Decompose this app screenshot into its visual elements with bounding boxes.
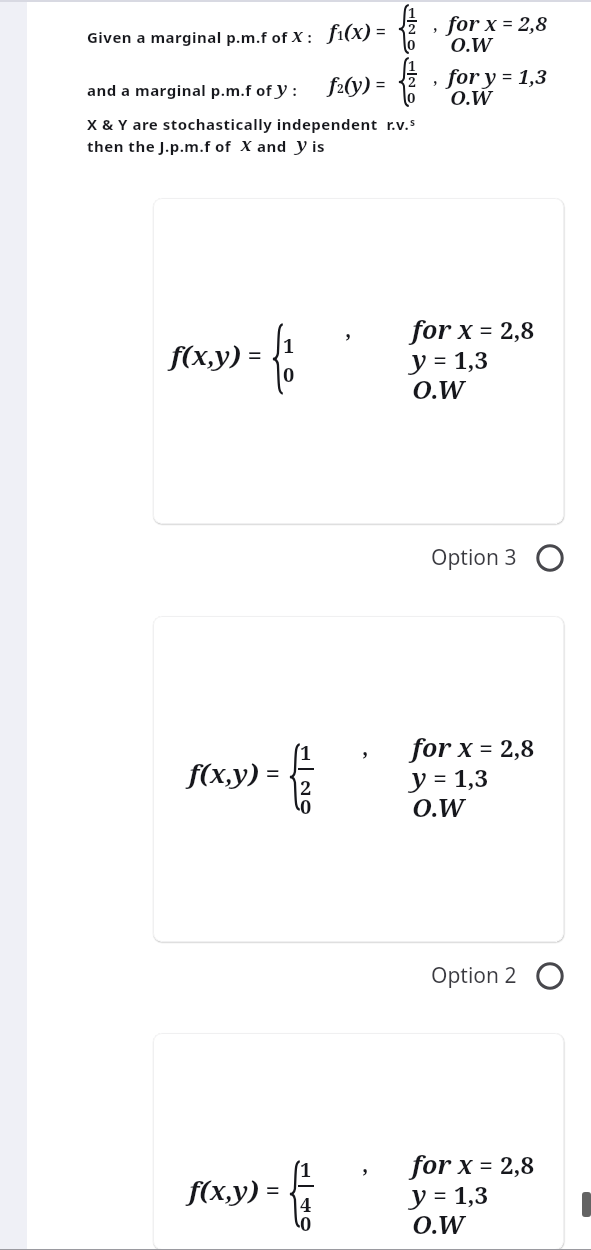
- staticText: =: [473, 731, 500, 764]
- staticText: 4: [300, 1191, 312, 1218]
- staticText: 2: [300, 774, 312, 801]
- staticText: f(x,y) =: [171, 337, 262, 372]
- staticText: O.W: [412, 790, 464, 824]
- staticText: ,: [362, 1148, 369, 1178]
- staticText: 2: [408, 72, 416, 91]
- staticText: y: [292, 132, 312, 157]
- staticText: :: [303, 27, 313, 47]
- staticText: 1,3: [454, 1178, 489, 1211]
- staticText: Option 3: [431, 543, 517, 572]
- staticText: f: [329, 72, 337, 98]
- staticText: =: [427, 761, 454, 794]
- staticText: O.W: [412, 1207, 464, 1241]
- staticText: :: [288, 80, 298, 100]
- staticText: for x: [412, 1147, 473, 1181]
- staticText: 0: [300, 793, 312, 820]
- staticText: 2: [337, 80, 344, 96]
- staticText: is: [312, 136, 326, 156]
- staticText: y: [412, 1177, 427, 1211]
- staticText: 0: [283, 361, 295, 388]
- staticText: Given a marginal p.m.f of: [87, 27, 292, 47]
- staticText: 1: [408, 3, 416, 22]
- button[interactable]: f(x,y) =: [153, 1033, 564, 1250]
- staticText: ,: [433, 67, 438, 89]
- staticText: =: [427, 343, 454, 376]
- staticText: 2,8: [500, 313, 535, 346]
- staticText: y: [412, 342, 427, 376]
- staticText: 1: [300, 739, 312, 766]
- staticText: 0: [407, 34, 416, 54]
- staticText: =: [427, 1178, 454, 1211]
- staticText: f(x,y) =: [189, 755, 280, 790]
- staticText: 0: [407, 87, 416, 107]
- button[interactable]: Option 2: [27, 961, 564, 990]
- staticText: O.W: [412, 372, 464, 406]
- staticText: ,: [345, 313, 352, 343]
- staticText: for x: [412, 312, 473, 346]
- staticText: 0: [300, 1210, 312, 1237]
- staticText: 2,8: [500, 731, 535, 764]
- staticText: 2: [408, 19, 416, 38]
- staticText: s: [410, 115, 416, 129]
- staticText: for y = 1,3: [448, 63, 547, 90]
- staticText: y: [277, 76, 288, 101]
- staticText: 1: [408, 56, 416, 75]
- staticText: 2,8: [500, 1148, 535, 1181]
- button[interactable]: Option 3: [27, 543, 564, 572]
- staticText: 1: [337, 27, 344, 43]
- staticText: 1: [300, 1156, 312, 1183]
- staticText: then the J.p.m.f of: [87, 136, 236, 156]
- button[interactable]: f(x,y) =: [153, 198, 564, 524]
- staticText: X & Y are stochastically independent r.v…: [87, 114, 410, 134]
- staticText: x: [292, 23, 303, 48]
- staticText: for x = 2,8: [448, 10, 547, 37]
- staticText: =: [473, 1148, 500, 1181]
- staticText: Option 2: [431, 961, 517, 990]
- staticText: y: [412, 760, 427, 794]
- staticText: x: [236, 132, 257, 157]
- button[interactable]: f(x,y) =: [153, 616, 564, 942]
- staticText: (x) =: [344, 19, 387, 45]
- staticText: f: [329, 19, 337, 45]
- other: Option 3: [536, 544, 564, 572]
- other: Option 2: [536, 962, 564, 990]
- staticText: and a marginal p.m.f of: [87, 80, 277, 100]
- staticText: ,: [433, 14, 438, 36]
- staticText: O.W: [450, 84, 492, 111]
- staticText: (y) =: [344, 72, 386, 98]
- staticText: f(x,y) =: [189, 1172, 280, 1207]
- staticText: 1,3: [454, 761, 489, 794]
- staticText: 1: [283, 332, 295, 359]
- staticText: =: [473, 313, 500, 346]
- staticText: 1,3: [454, 343, 489, 376]
- staticText: ,: [362, 731, 369, 761]
- staticText: and: [257, 136, 292, 156]
- staticText: for x: [412, 730, 473, 764]
- staticText: O.W: [450, 31, 492, 58]
